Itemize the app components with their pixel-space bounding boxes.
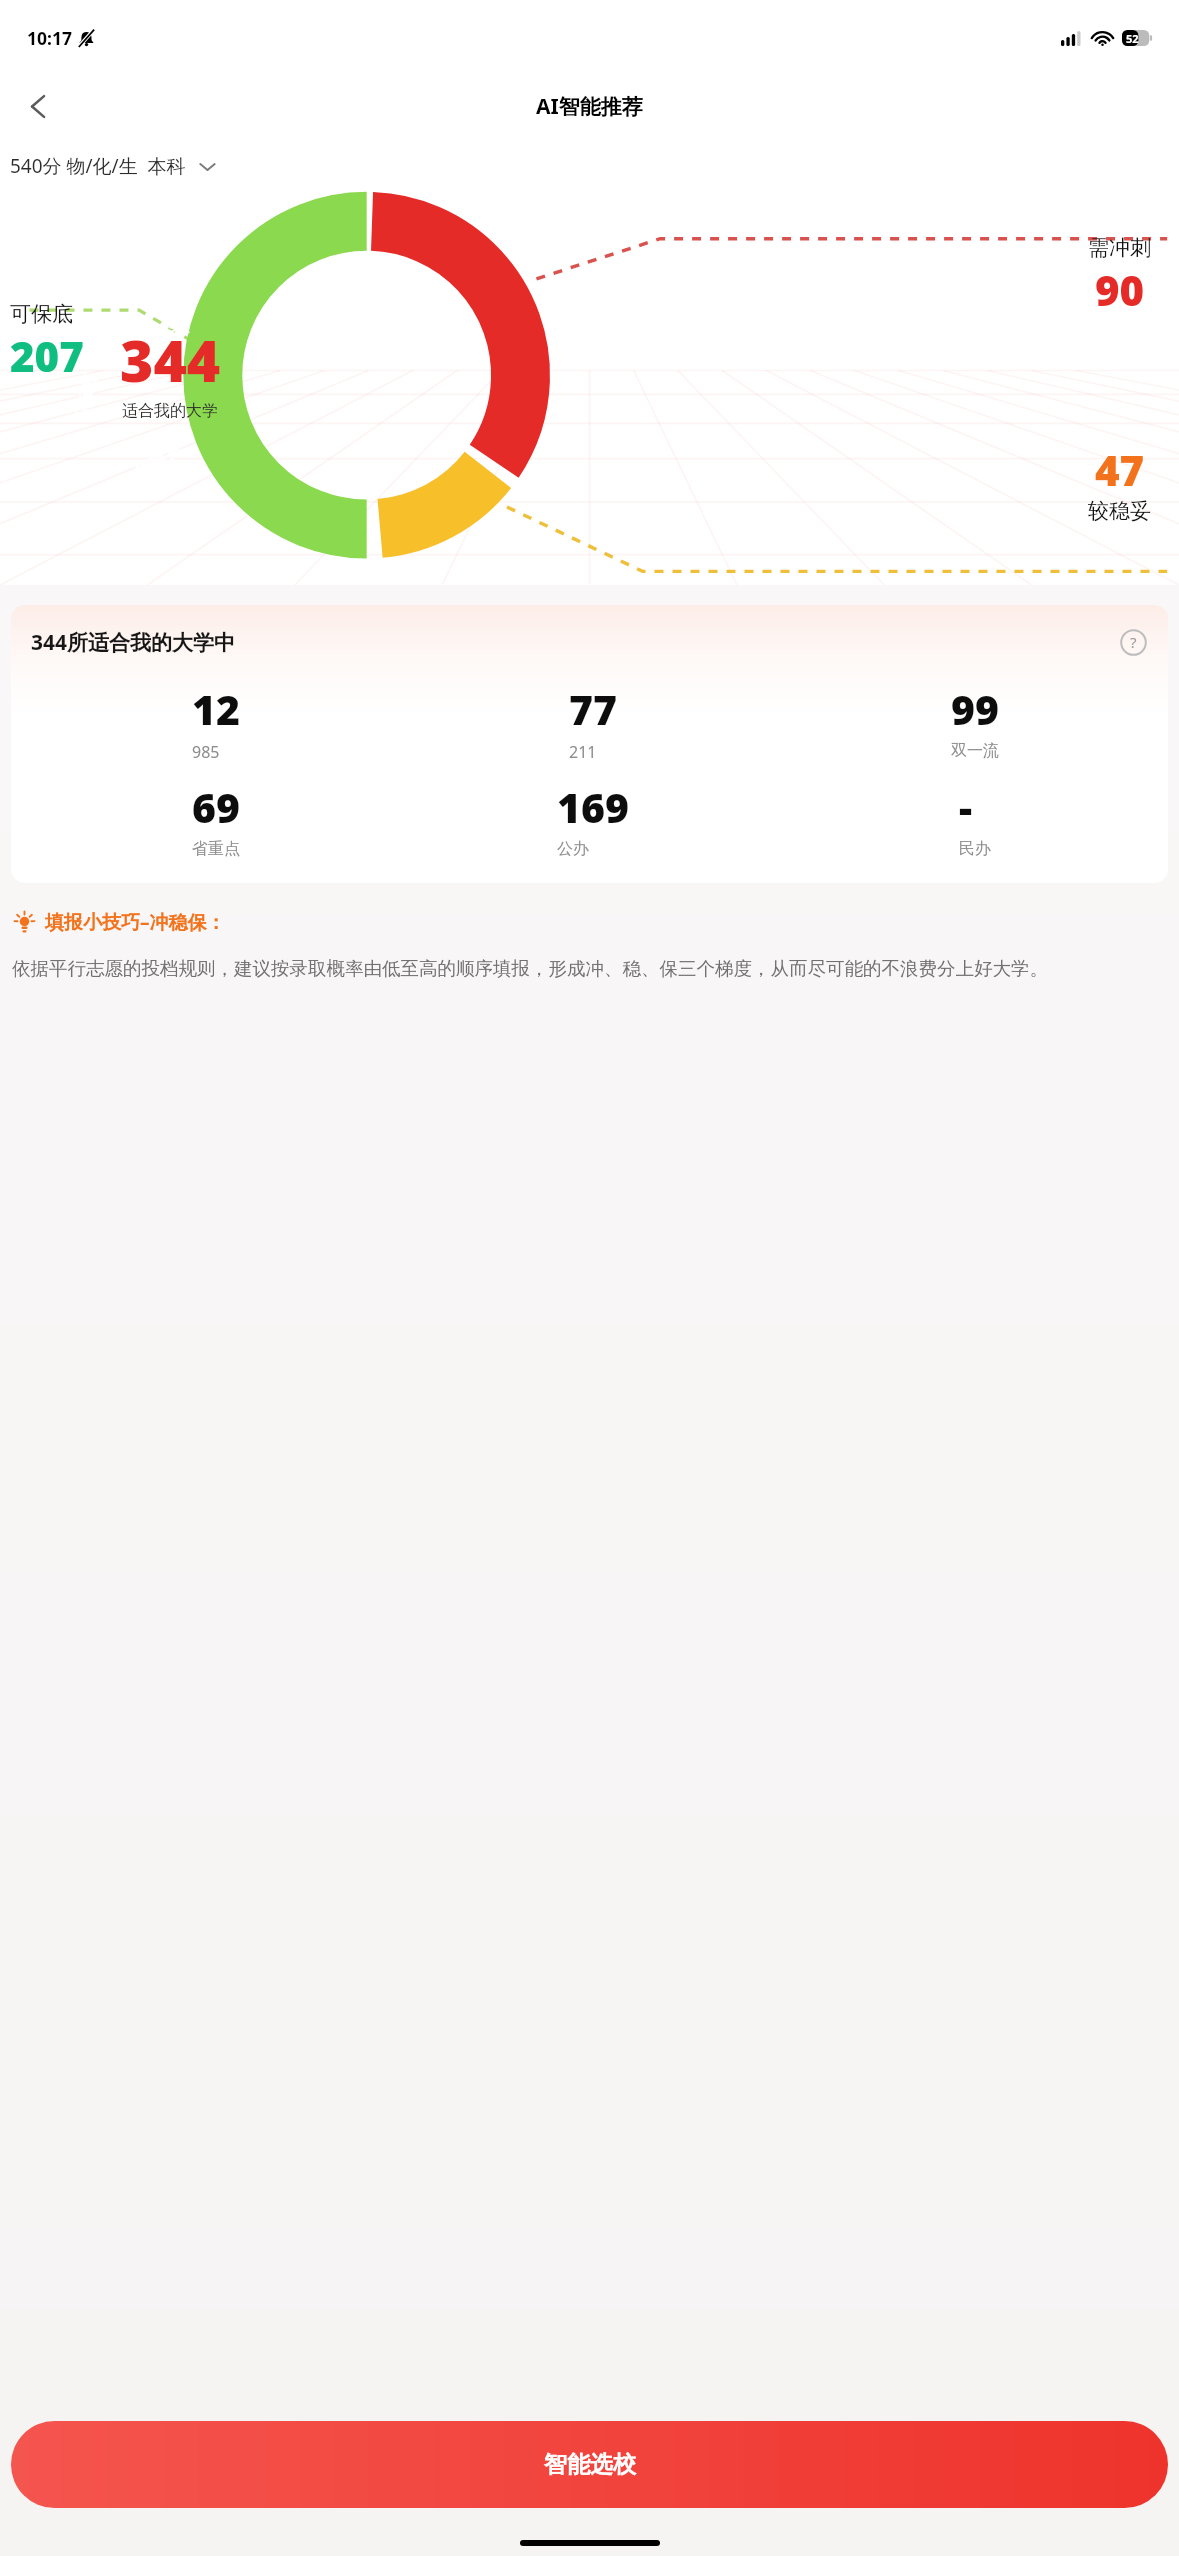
staticText: 较稳妥 — [1088, 498, 1151, 524]
button[interactable]: Help — [1118, 627, 1148, 657]
staticText: 适合我的大学 — [122, 401, 218, 421]
staticText: 99 — [951, 681, 1000, 737]
staticText: 省重点 — [192, 839, 240, 859]
button[interactable]: Back — [10, 78, 66, 134]
staticText: 需冲刺 — [149, 291, 191, 343]
staticText: 344 — [120, 321, 221, 399]
staticText: 智能选校 — [544, 2450, 636, 2479]
staticText: 69 — [192, 779, 241, 835]
staticText: 52 — [1126, 31, 1139, 46]
button[interactable]: 智能选校 — [11, 2421, 1168, 2508]
staticText: ? — [1130, 632, 1137, 652]
staticText: 公办 — [557, 839, 589, 859]
staticText: AI智能推荐 — [536, 92, 643, 121]
staticText: 47 — [1095, 441, 1145, 498]
staticText: 207 — [10, 327, 84, 384]
staticText: 10:17 — [27, 26, 72, 50]
button[interactable]: 540分 物/化/生 本科 — [0, 137, 1179, 195]
staticText: 填报小技巧–冲稳保： — [45, 909, 226, 935]
staticText: 需冲刺 — [1088, 235, 1151, 261]
staticText: - — [959, 779, 973, 835]
staticText: 344所适合我的大学中 — [31, 628, 236, 657]
staticText: 民办 — [959, 839, 991, 859]
staticText: 依据平行志愿的投档规则，建议按录取概率由低至高的顺序填报，形成冲、稳、保三个梯度… — [12, 957, 1048, 980]
staticText: 可保底 — [71, 372, 101, 423]
button[interactable]: 344所适合我的大学中 — [11, 605, 1168, 883]
staticText: 985 — [192, 741, 220, 763]
staticText: 双一流 — [951, 741, 999, 761]
staticText: 77 — [569, 681, 618, 737]
staticText: 211 — [569, 741, 597, 763]
staticText: 90 — [1095, 261, 1145, 318]
staticText: 540分 物/化/生 本科 — [10, 153, 186, 179]
staticText: 可保底 — [10, 301, 73, 327]
staticText: 12 — [192, 681, 241, 737]
staticText: 169 — [557, 779, 630, 835]
